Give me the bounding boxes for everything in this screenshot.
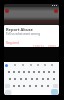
staticText: Tell us what went wrong xyxy=(6,32,41,36)
button[interactable]: SEND xyxy=(47,45,57,47)
button[interactable]: CANCEL xyxy=(32,45,46,47)
button[interactable]: Avatar xyxy=(54,9,58,13)
button[interactable]: Enter xyxy=(51,89,58,95)
staticText: CANCEL xyxy=(33,45,45,47)
staticText: SEND xyxy=(48,45,56,47)
button[interactable]: Avatar xyxy=(5,9,9,13)
button[interactable]: Google xyxy=(5,64,8,67)
button[interactable]: Symbols xyxy=(5,90,11,95)
staticText: Required xyxy=(6,41,19,45)
staticText: Report Abuse xyxy=(6,27,33,32)
